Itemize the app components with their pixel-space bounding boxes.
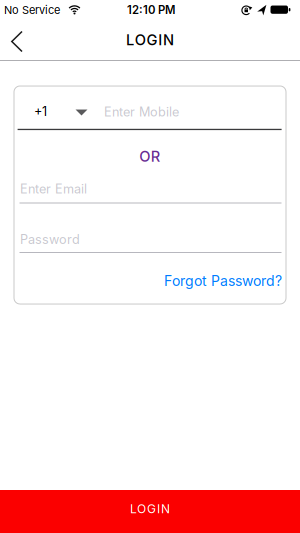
staticText: Enter Email bbox=[20, 181, 87, 197]
staticText: Password bbox=[20, 232, 80, 247]
button[interactable]: LOGIN bbox=[0, 490, 300, 533]
staticText: 12:10 PM bbox=[127, 3, 175, 17]
staticText: Forgot Password? bbox=[164, 272, 282, 289]
button[interactable]: Forgot Password? bbox=[14, 86, 282, 102]
button[interactable] bbox=[0, 21, 34, 61]
button[interactable]: Enter Mobile bbox=[100, 86, 286, 126]
button[interactable]: Enter Email bbox=[14, 86, 274, 102]
staticText: +1 bbox=[34, 104, 47, 119]
button[interactable]: Password bbox=[14, 86, 274, 102]
button[interactable]: +1 bbox=[14, 86, 100, 126]
staticText: Enter Mobile bbox=[104, 104, 179, 120]
staticText: LOGIN bbox=[130, 502, 170, 516]
staticText: OR bbox=[139, 148, 161, 165]
staticText: LOGIN bbox=[126, 31, 174, 49]
staticText: No Service bbox=[4, 3, 60, 17]
